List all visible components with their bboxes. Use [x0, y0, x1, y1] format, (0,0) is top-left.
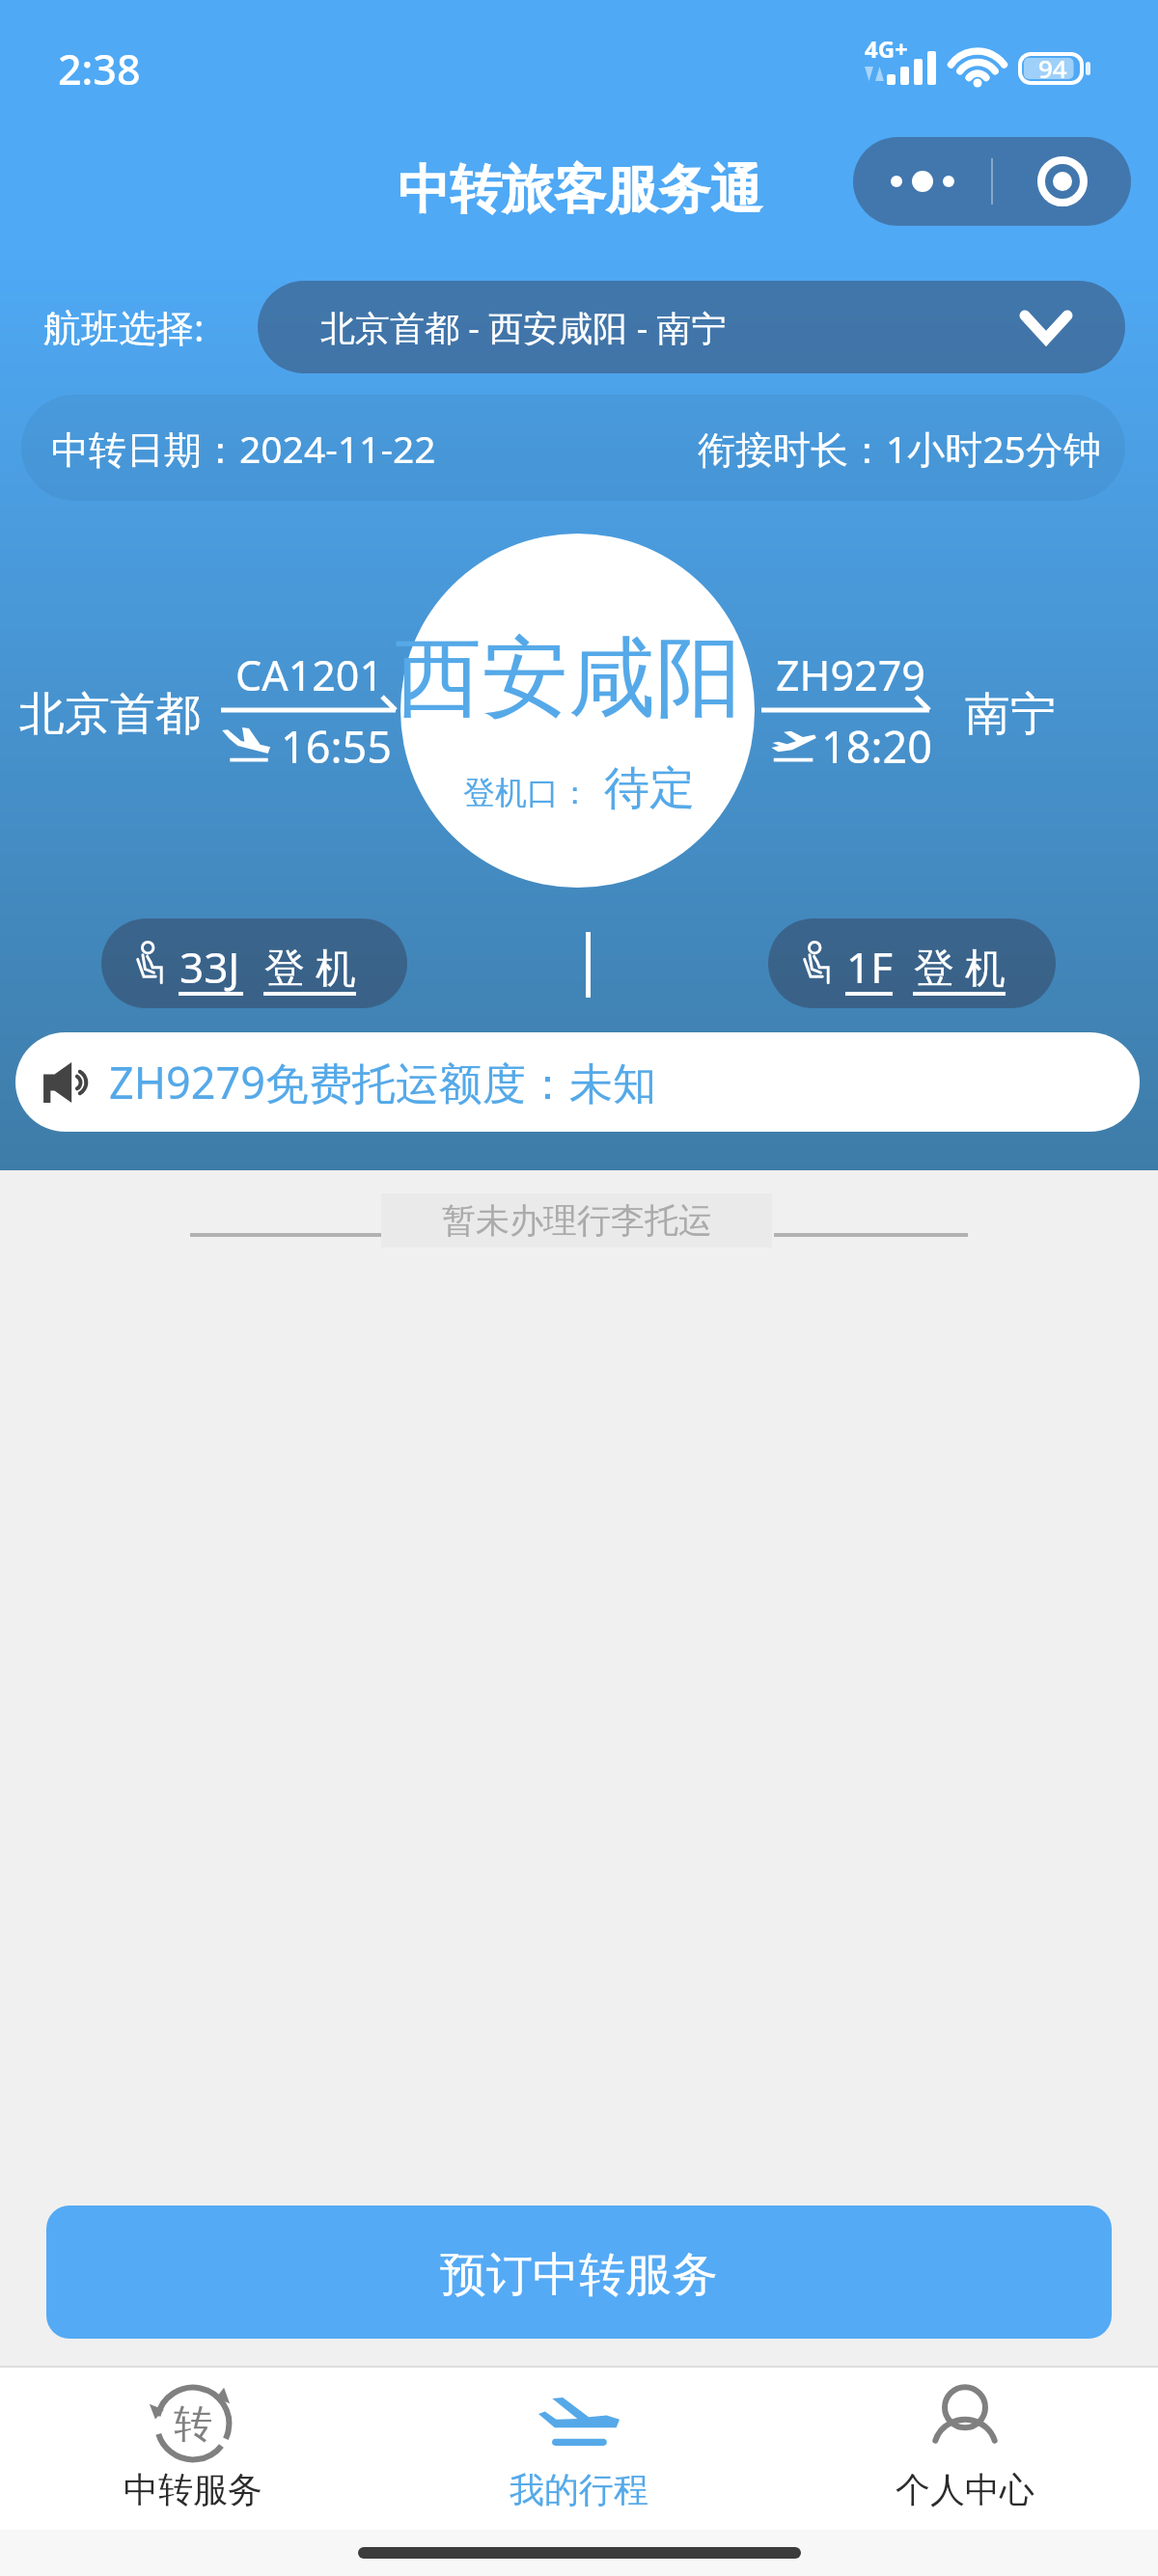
button[interactable]: 我的行程 — [386, 2368, 772, 2530]
staticText: 预订中转服务 — [440, 2246, 718, 2304]
button[interactable]: 个人中心 — [772, 2368, 1158, 2530]
button[interactable]: 33J — [101, 918, 407, 1008]
staticText: 94 — [1038, 51, 1067, 84]
staticText: 北京首都 - 西安咸阳 - 南宁 — [320, 304, 727, 351]
staticText: 登 机 — [264, 939, 356, 994]
staticText: 1F — [846, 938, 894, 996]
staticText: 登机口： — [463, 773, 591, 813]
staticText: 西安咸阳 — [395, 623, 742, 732]
button[interactable]: 1F — [768, 918, 1056, 1008]
button[interactable]: More options and close mini program — [853, 137, 1131, 226]
staticText: 航班选择: — [43, 301, 205, 352]
button[interactable]: 北京首都 - 西安咸阳 - 南宁 — [258, 281, 1125, 373]
staticText: 待定 — [604, 760, 695, 817]
staticText: 衔接时长：1小时25分钟 — [698, 423, 1101, 474]
staticText: 中转旅客服务通 — [398, 157, 762, 223]
staticText: CA1201 — [235, 646, 384, 703]
staticText: 我的行程 — [510, 2468, 648, 2511]
staticText: 18:20 — [821, 717, 933, 776]
button[interactable]: 预订中转服务 — [46, 2206, 1112, 2339]
staticText: 北京首都 — [19, 686, 201, 743]
button[interactable]: ZH9279免费托运额度：未知 — [15, 1032, 1140, 1132]
staticText: 登 机 — [914, 939, 1006, 994]
staticText: ZH9279 — [776, 646, 925, 703]
staticText: 个人中心 — [896, 2468, 1034, 2511]
staticText: ZH9279免费托运额度：未知 — [109, 1053, 657, 1111]
staticText: 33J — [179, 938, 240, 996]
staticText: 2:38 — [58, 41, 141, 97]
staticText: 暂未办理行李托运 — [442, 1199, 712, 1242]
button[interactable]: 转 — [0, 2368, 386, 2530]
staticText: 中转服务 — [124, 2468, 262, 2511]
staticText: 转 — [174, 2399, 212, 2448]
staticText: 16:55 — [281, 717, 393, 776]
staticText: 中转日期：2024-11-22 — [51, 423, 436, 474]
staticText: 4G+ — [865, 33, 908, 65]
staticText: 南宁 — [965, 686, 1056, 743]
